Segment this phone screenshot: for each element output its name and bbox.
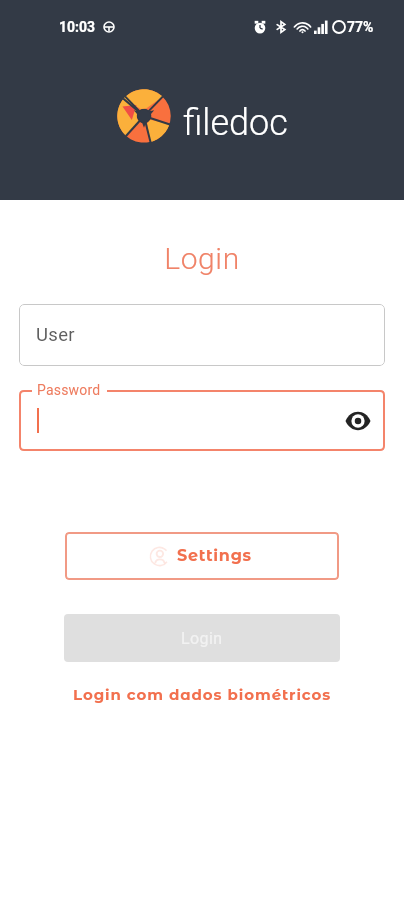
staticText: Password xyxy=(37,382,101,398)
button[interactable]: Show password xyxy=(343,406,373,436)
button[interactable]: User xyxy=(19,304,385,366)
staticText: filedoc xyxy=(183,102,288,144)
staticText: Login xyxy=(0,241,404,276)
staticText: User xyxy=(36,324,75,346)
staticText: Settings xyxy=(177,546,252,566)
staticText: Login xyxy=(181,629,223,648)
button[interactable]: Settings xyxy=(65,532,339,580)
staticText: 77% xyxy=(347,19,374,35)
staticText: Login com dados biométricos xyxy=(73,685,332,703)
button[interactable]: Login com dados biométricos xyxy=(0,677,404,711)
button[interactable]: Password xyxy=(19,390,385,451)
staticText: 10:03 xyxy=(59,19,96,35)
